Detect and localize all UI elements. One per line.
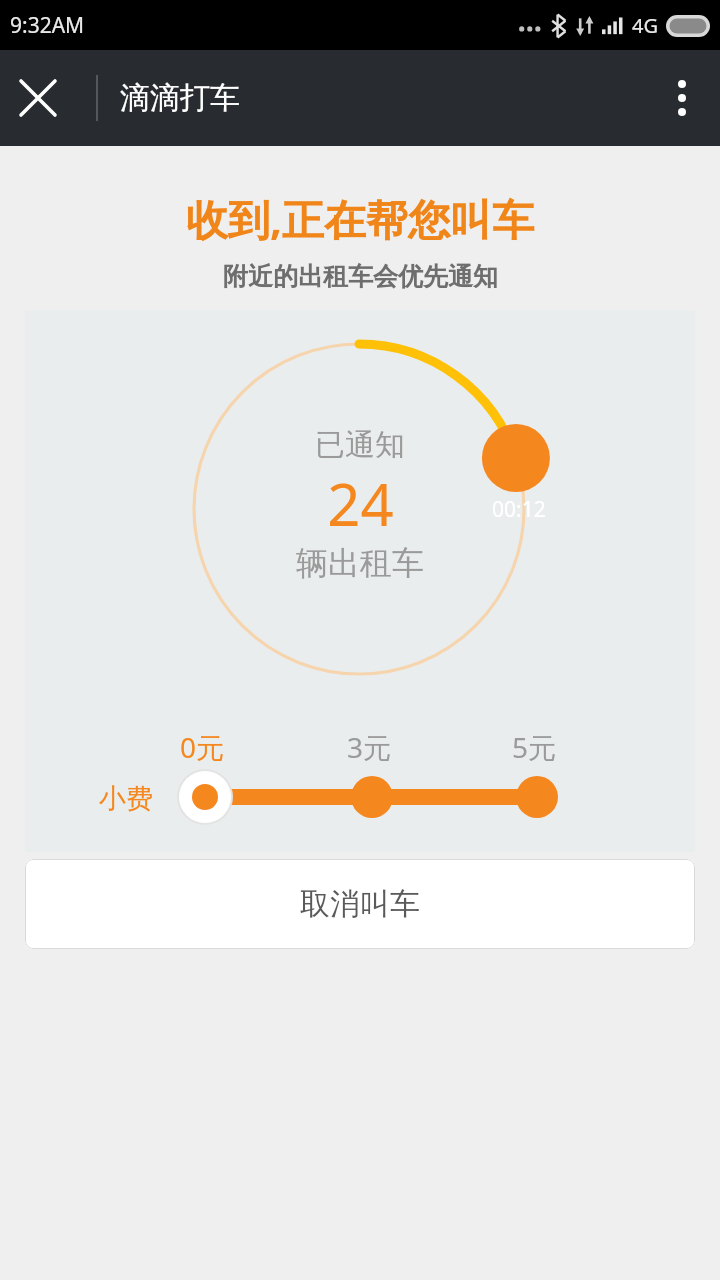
staticText: 00:12 <box>492 495 546 524</box>
button[interactable]: Close <box>0 60 76 136</box>
staticText: 取消叫车 <box>300 885 420 923</box>
staticText: 9:32AM <box>10 11 85 40</box>
button[interactable]: More options <box>644 60 720 136</box>
staticText: 滴滴打车 <box>120 79 240 117</box>
staticText: 4G <box>632 12 658 39</box>
staticText: 附近的出租车会优先通知 <box>223 261 498 292</box>
staticText: 辆出租车 <box>296 543 424 583</box>
staticText: 收到,正在帮您叫车 <box>186 190 534 247</box>
staticText: 小费 <box>99 782 153 816</box>
staticText: 已通知 <box>315 426 405 464</box>
staticText: 24 <box>327 464 394 543</box>
staticText: 3元 <box>347 728 392 766</box>
button[interactable]: Tip amount slider <box>25 762 695 832</box>
button[interactable]: 取消叫车 <box>25 859 695 949</box>
staticText: 5元 <box>512 728 557 766</box>
staticText: 0元 <box>180 728 225 766</box>
